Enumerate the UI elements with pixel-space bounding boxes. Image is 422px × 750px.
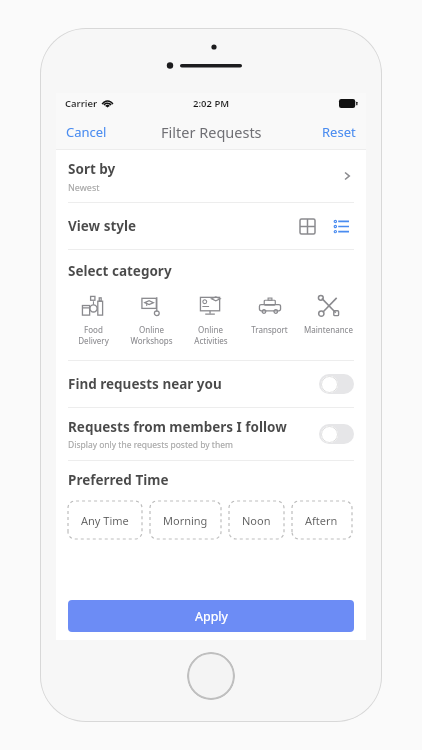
button[interactable]: Requests from members I follow [56, 408, 366, 460]
staticText: Noon [242, 513, 271, 528]
button[interactable]: Noon [229, 501, 284, 539]
staticText: Morning [163, 513, 208, 528]
button[interactable]: Transport [240, 292, 299, 337]
button[interactable]: List view [328, 213, 354, 239]
staticText: Carrier [65, 97, 98, 110]
staticText: Preferred Time [68, 471, 169, 489]
button[interactable]: Find requests near you [319, 374, 354, 394]
button[interactable]: Online [181, 292, 240, 348]
button[interactable]: Apply [68, 600, 354, 632]
button[interactable]: Food [64, 292, 122, 348]
staticText: Online [198, 324, 223, 335]
staticText: Cancel [66, 123, 107, 141]
button[interactable]: Afternoon [292, 501, 352, 539]
button[interactable]: Grid view [294, 213, 320, 239]
button[interactable]: Cancel [56, 116, 117, 148]
button[interactable]: Find requests near you [56, 361, 366, 407]
staticText: Maintenance [304, 324, 353, 335]
button[interactable]: Online [122, 292, 181, 348]
staticText: Any Time [81, 513, 129, 528]
staticText: Transport [251, 324, 288, 335]
staticText: Filter Requests [161, 122, 262, 142]
button[interactable]: Reset [312, 116, 366, 148]
staticText: Select category [68, 262, 172, 280]
button[interactable]: Requests from members I follow [319, 424, 354, 444]
staticText: Requests from members I follow [68, 418, 287, 436]
staticText: Workshops [130, 335, 173, 346]
button[interactable]: Any Time [68, 501, 142, 539]
staticText: Find requests near you [68, 375, 222, 393]
staticText: Newest [68, 181, 100, 193]
staticText: Reset [322, 123, 356, 141]
staticText: Apply [195, 608, 228, 625]
staticText: 2:02 PM [193, 97, 230, 110]
staticText: Delivery [78, 335, 109, 346]
button[interactable]: Sort by [56, 150, 366, 202]
staticText: Display only the requests posted by them [68, 439, 233, 451]
button[interactable]: Maintenance [299, 292, 358, 337]
staticText: Food [84, 324, 103, 335]
button[interactable]: Morning [150, 501, 221, 539]
staticText: Sort by [68, 160, 116, 178]
staticText: Online [139, 324, 164, 335]
staticText: Afternoon [305, 513, 339, 528]
staticText: Activities [194, 335, 228, 346]
staticText: View style [68, 217, 294, 235]
